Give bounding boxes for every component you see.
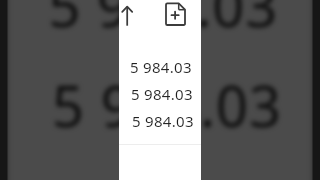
staticText: 5 984.03 (48, 0, 279, 42)
button[interactable]: Up (121, 2, 143, 24)
button[interactable]: 5 984.03 (119, 80, 201, 107)
button[interactable]: 5 984.03 (7, 0, 312, 53)
staticText: 5 984.03 (132, 111, 194, 131)
button[interactable]: 5 984.03 (119, 53, 201, 80)
button[interactable]: 5 984.03 (119, 107, 201, 134)
staticText: 5 984.03 (131, 84, 193, 104)
button[interactable]: 5 984.03 (7, 53, 312, 153)
button[interactable]: 5 984.03 (7, 153, 312, 180)
staticText: 5 984.03 (56, 168, 286, 180)
staticText: 5 984.03 (52, 68, 283, 142)
staticText: 5 984.03 (130, 57, 192, 77)
button[interactable]: New document (163, 1, 187, 25)
